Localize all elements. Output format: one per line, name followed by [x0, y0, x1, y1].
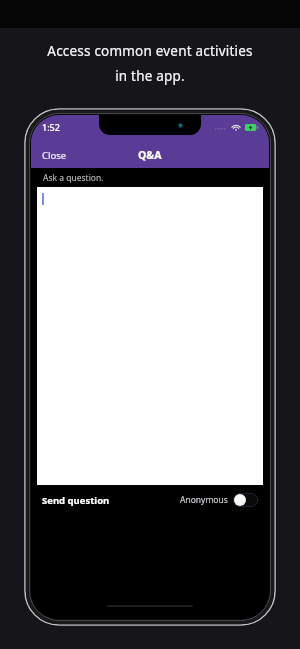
staticText: Q&A: [138, 148, 162, 162]
staticText: Access common event activities: [47, 42, 253, 60]
staticText: in the app.: [115, 67, 185, 85]
staticText: Anonymous: [180, 494, 228, 506]
staticText: 1:52: [42, 121, 60, 133]
button[interactable]: Anonymous toggle: [233, 493, 258, 507]
button[interactable]: Anonymous: [180, 493, 258, 507]
button[interactable]: Send question: [42, 490, 110, 511]
button[interactable]: Close: [31, 145, 78, 166]
staticText: Close: [42, 149, 67, 162]
staticText: Ask a question.: [43, 172, 104, 184]
staticText: Send question: [42, 494, 110, 507]
